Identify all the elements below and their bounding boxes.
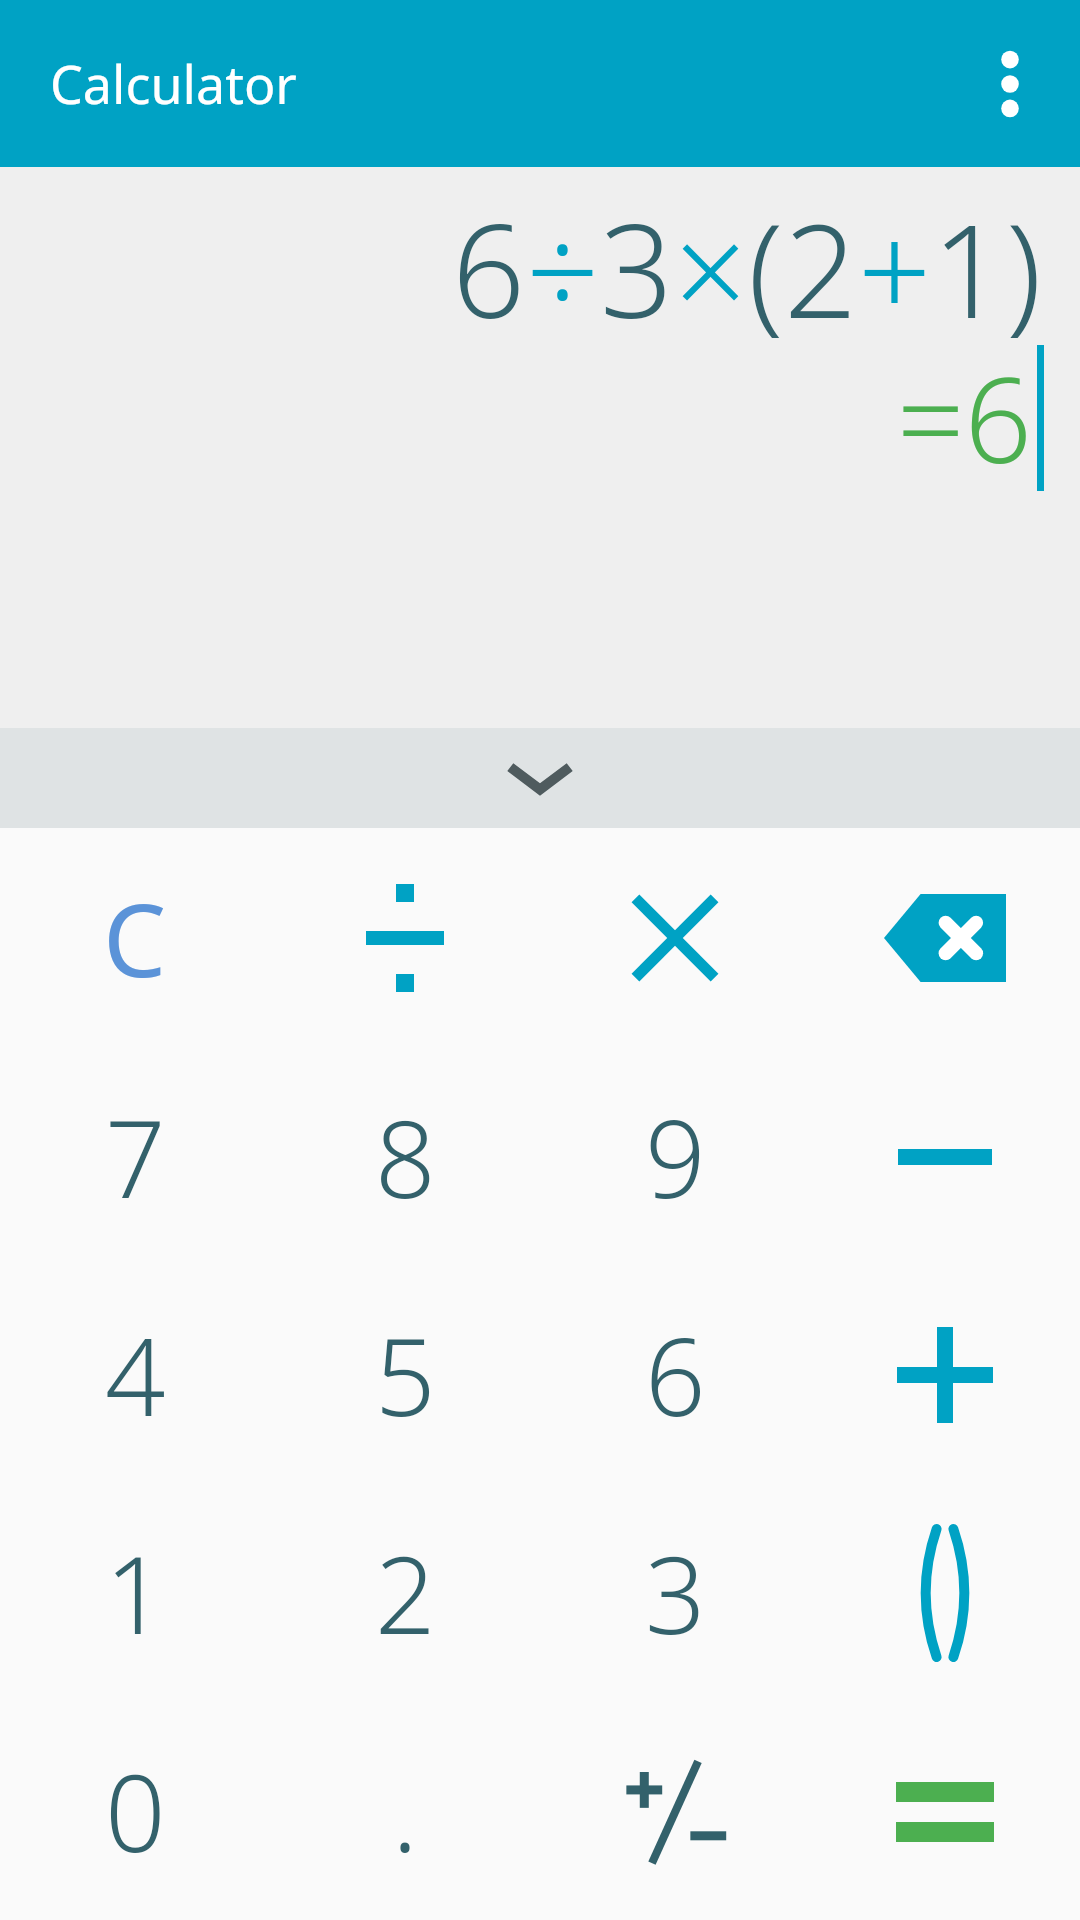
staticText: 6 xyxy=(452,181,526,355)
button[interactable]: More options xyxy=(960,34,1060,134)
staticText: × xyxy=(674,181,748,355)
staticText: 3 xyxy=(645,1521,706,1665)
button[interactable]: 7 xyxy=(0,1047,270,1266)
staticText: 4 xyxy=(105,1303,166,1447)
button[interactable]: Backspace xyxy=(810,828,1080,1047)
button[interactable]: 6 xyxy=(540,1266,810,1484)
staticText: 6 xyxy=(645,1303,706,1447)
button[interactable]: Show history xyxy=(0,728,1080,828)
button[interactable]: 8 xyxy=(270,1047,540,1266)
staticText: 2 xyxy=(784,181,858,355)
staticText: ) xyxy=(1006,181,1042,355)
staticText: 0 xyxy=(105,1739,166,1883)
button[interactable]: Plus xyxy=(810,1266,1080,1484)
button[interactable]: Minus xyxy=(810,1047,1080,1266)
button[interactable]: Equals xyxy=(810,1702,1080,1920)
button[interactable]: 3 xyxy=(540,1484,810,1702)
button[interactable]: Parentheses xyxy=(810,1484,1080,1702)
staticText: 5 xyxy=(375,1303,436,1447)
staticText: C xyxy=(103,870,167,1006)
staticText: ÷ xyxy=(526,181,600,355)
button[interactable]: Multiply xyxy=(540,828,810,1047)
staticText: 2 xyxy=(375,1521,436,1665)
button[interactable]: 5 xyxy=(270,1266,540,1484)
button[interactable]: 1 xyxy=(0,1484,270,1702)
button[interactable]: 4 xyxy=(0,1266,270,1484)
button[interactable]: Decimal point xyxy=(270,1702,540,1920)
staticText: ( xyxy=(748,181,784,355)
button[interactable]: Clear xyxy=(0,828,270,1047)
staticText: 9 xyxy=(645,1085,706,1229)
staticText: 8 xyxy=(375,1085,436,1229)
staticText: + xyxy=(858,181,932,355)
staticText: Calculator xyxy=(50,48,297,119)
button[interactable]: 2 xyxy=(270,1484,540,1702)
staticText: 7 xyxy=(105,1085,166,1229)
button[interactable]: 9 xyxy=(540,1047,810,1266)
staticText: . xyxy=(392,1739,418,1883)
button[interactable]: Divide xyxy=(270,828,540,1047)
staticText: 3 xyxy=(600,181,674,355)
staticText: =6 xyxy=(897,337,1032,498)
button[interactable]: Plus or minus xyxy=(540,1702,810,1920)
staticText: 1 xyxy=(932,181,1006,355)
button[interactable]: 0 xyxy=(0,1702,270,1920)
staticText: 1 xyxy=(105,1521,166,1665)
